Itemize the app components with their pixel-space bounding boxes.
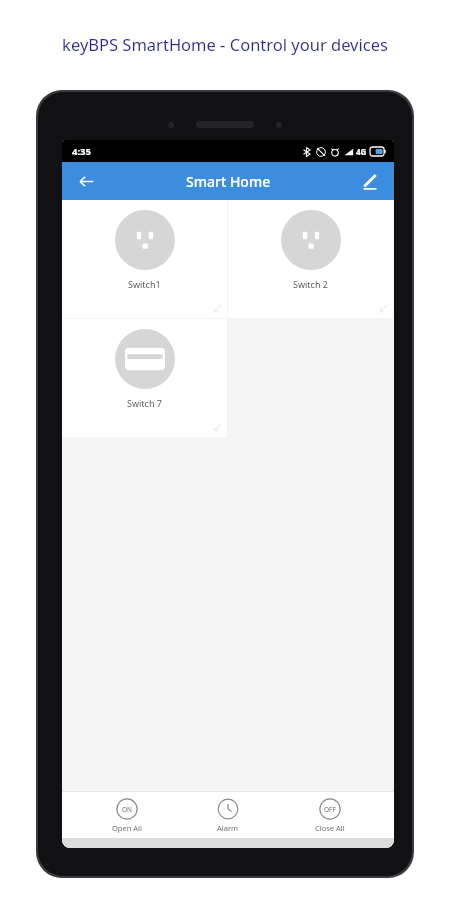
staticText: Open All bbox=[112, 823, 142, 833]
staticText: Switch1 bbox=[128, 278, 161, 290]
staticText: Close All bbox=[315, 823, 345, 833]
staticText: Switch 2 bbox=[293, 278, 328, 290]
button[interactable]: Edit bbox=[354, 165, 386, 197]
staticText: 4:35 bbox=[72, 145, 91, 158]
staticText: ON bbox=[122, 805, 133, 814]
button[interactable]: ON bbox=[90, 798, 164, 833]
staticText: OFF bbox=[324, 805, 336, 814]
staticText: 4G bbox=[356, 146, 367, 157]
button[interactable]: OFF bbox=[293, 798, 367, 833]
staticText: keyBPS SmartHome - Control your devices bbox=[62, 33, 388, 55]
staticText: Smart Home bbox=[186, 172, 271, 191]
button[interactable]: Switch 2 bbox=[228, 200, 393, 318]
button[interactable]: Alarm bbox=[191, 798, 265, 833]
button[interactable]: Back bbox=[70, 165, 102, 197]
staticText: Alarm bbox=[217, 823, 239, 833]
button[interactable]: Switch1 bbox=[62, 200, 227, 318]
staticText: Switch 7 bbox=[127, 397, 162, 409]
button[interactable]: Switch 7 bbox=[62, 319, 227, 437]
